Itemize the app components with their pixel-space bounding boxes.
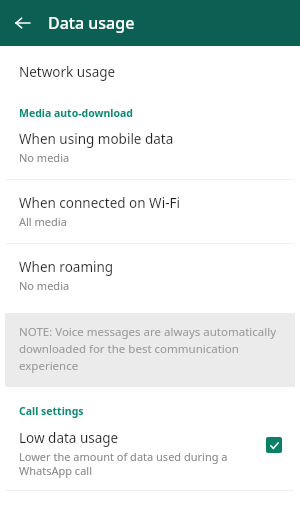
staticText: NOTE: Voice messages are always automati… xyxy=(19,324,285,374)
button[interactable]: Low data usage checkbox xyxy=(264,435,284,455)
staticText: No media xyxy=(19,278,70,293)
button[interactable]: When connected on Wi-Fi xyxy=(0,180,300,243)
staticText: When using mobile data xyxy=(19,130,174,148)
staticText: When roaming xyxy=(19,258,114,276)
staticText: Data usage xyxy=(48,12,135,34)
staticText: Lower the amount of data used during a W… xyxy=(19,449,256,478)
button[interactable]: Network usage xyxy=(0,57,300,87)
button[interactable]: When roaming xyxy=(0,244,300,307)
button[interactable]: When using mobile data xyxy=(0,130,300,179)
staticText: All media xyxy=(19,214,67,229)
staticText: Media auto-download xyxy=(19,106,133,120)
staticText: Call settings xyxy=(19,404,84,418)
staticText: When connected on Wi-Fi xyxy=(19,194,180,212)
staticText: No media xyxy=(19,150,70,165)
staticText: Network usage xyxy=(19,63,116,81)
button[interactable]: Low data usage xyxy=(0,429,300,490)
staticText: Low data usage xyxy=(19,429,119,447)
button[interactable]: Back xyxy=(10,10,36,36)
